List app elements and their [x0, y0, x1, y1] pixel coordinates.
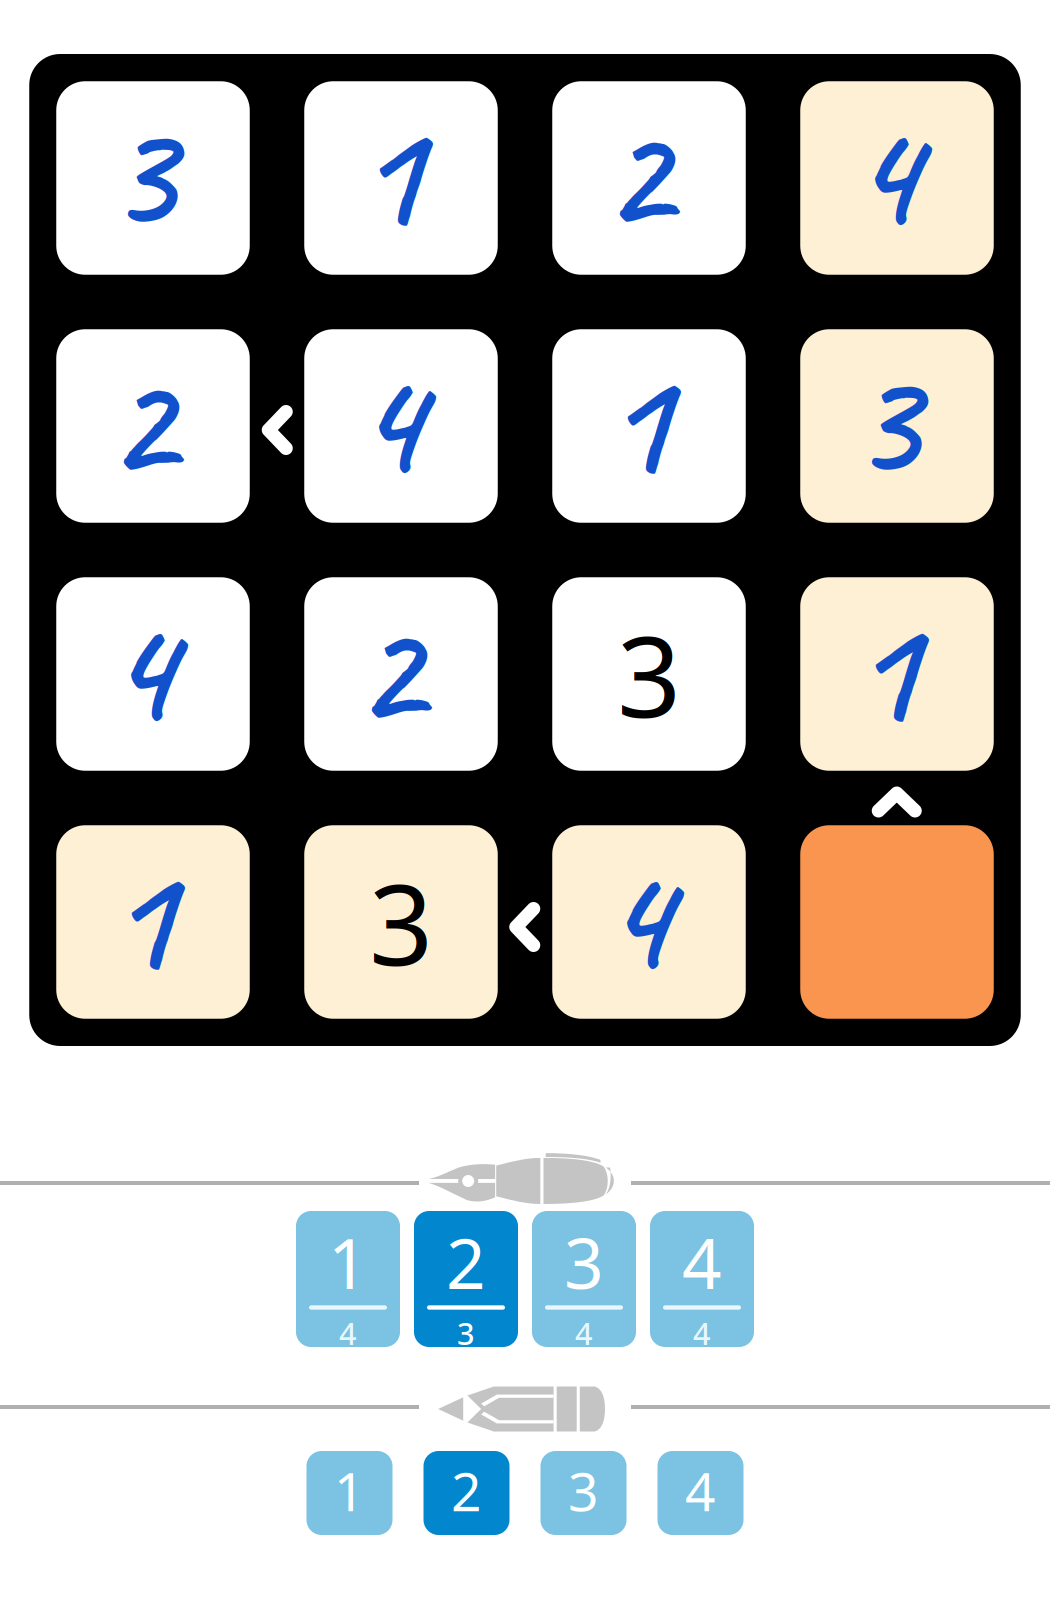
button[interactable]: Cell 1 [304, 81, 498, 275]
staticText: 2 [446, 1216, 486, 1308]
staticText: 1 [602, 327, 670, 517]
staticText: 3 [369, 848, 433, 996]
button[interactable]: Cell 2 [304, 577, 498, 771]
button[interactable]: 4 [657, 1451, 743, 1535]
button[interactable]: Cell 1 [552, 329, 746, 523]
staticText: 4 [575, 1313, 593, 1353]
staticText: 3 [850, 327, 918, 517]
staticText: 4 [602, 823, 670, 1013]
button[interactable]: Cell 1 [800, 577, 994, 771]
button[interactable]: Cell 2 [552, 81, 746, 275]
button[interactable]: Cell 3 [56, 81, 250, 275]
staticText: 2 [602, 79, 670, 269]
staticText: 3 [568, 1455, 599, 1526]
button[interactable]: Cell 4 [552, 825, 746, 1019]
button[interactable]: 2 [414, 1211, 518, 1347]
button[interactable]: Cell 3 [552, 577, 746, 771]
button[interactable]: Pen mode [419, 1155, 631, 1211]
staticText: 4 [685, 1455, 716, 1526]
staticText: 1 [328, 1216, 368, 1308]
staticText: 3 [564, 1216, 604, 1308]
staticText: 1 [334, 1455, 365, 1526]
staticText: 1 [354, 79, 422, 269]
staticText: 4 [339, 1313, 357, 1353]
button[interactable]: Cell 1 [56, 825, 250, 1019]
button[interactable]: Cell 3 [800, 329, 994, 523]
staticText: 2 [354, 575, 422, 765]
staticText: 4 [682, 1216, 722, 1308]
staticText: 3 [617, 600, 681, 748]
staticText: 2 [451, 1455, 482, 1526]
staticText: 1 [106, 823, 174, 1013]
button[interactable]: 3 [532, 1211, 636, 1347]
staticText: 2 [106, 327, 174, 517]
button[interactable]: 4 [650, 1211, 754, 1347]
staticText: 4 [850, 79, 918, 269]
button[interactable]: Cell 2 [56, 329, 250, 523]
button[interactable]: 2 [423, 1451, 509, 1535]
staticText: 3 [106, 79, 174, 269]
staticText: 4 [693, 1313, 711, 1353]
button[interactable]: 1 [296, 1211, 400, 1347]
button[interactable]: Cell 4 [800, 81, 994, 275]
button[interactable]: Cell 3 [304, 825, 498, 1019]
button[interactable]: Cell 4 [304, 329, 498, 523]
button[interactable]: Cell 4 [56, 577, 250, 771]
staticText: 1 [850, 575, 918, 765]
staticText: 4 [106, 575, 174, 765]
staticText: 4 [354, 327, 422, 517]
button[interactable]: Empty cell, selected [800, 825, 994, 1019]
button[interactable]: 1 [306, 1451, 392, 1535]
button[interactable]: 3 [540, 1451, 626, 1535]
staticText: 3 [457, 1313, 475, 1353]
button[interactable]: Pencil mode [419, 1381, 631, 1433]
